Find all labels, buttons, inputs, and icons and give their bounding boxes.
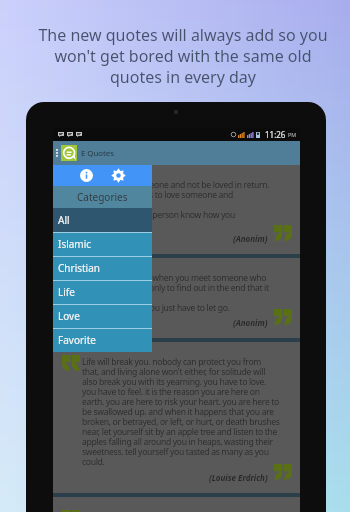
staticText: PM bbox=[288, 131, 297, 138]
button[interactable]: Favorite bbox=[53, 328, 152, 352]
button[interactable]: Islamic bbox=[53, 232, 152, 256]
staticText: Categories bbox=[77, 190, 128, 204]
button[interactable]: Menu bbox=[53, 141, 61, 165]
staticText: ost painful thing is when you meet someo… bbox=[82, 272, 269, 314]
staticText: Favorite bbox=[58, 333, 96, 347]
button[interactable]: Life will break you. nobody can protect … bbox=[53, 342, 300, 493]
staticText: Islamic bbox=[58, 237, 92, 251]
staticText: (Anonim) bbox=[233, 233, 268, 244]
staticText: Life bbox=[58, 285, 75, 299]
staticText: All bbox=[58, 213, 70, 227]
staticText: Christian bbox=[58, 261, 100, 275]
staticText: Love bbox=[58, 309, 80, 323]
staticText: (Anonim) bbox=[233, 317, 268, 328]
button[interactable]: Settings bbox=[111, 168, 126, 183]
button[interactable]: All bbox=[53, 208, 152, 232]
staticText: The new quotes will always add so you wo… bbox=[33, 24, 333, 88]
staticText: orld is to love someone and not be loved… bbox=[82, 179, 270, 231]
button[interactable]: Love bbox=[53, 304, 152, 328]
button[interactable]: Christian bbox=[53, 256, 152, 280]
staticText: Life will break you. nobody can protect … bbox=[82, 356, 280, 468]
staticText: 11:26 bbox=[265, 129, 286, 140]
button[interactable] bbox=[53, 497, 300, 512]
staticText: (Louise Erdrich) bbox=[209, 472, 268, 483]
staticText: E Quotes bbox=[81, 148, 114, 159]
button[interactable]: Life bbox=[53, 280, 152, 304]
button[interactable]: App icon bbox=[61, 145, 77, 161]
button[interactable]: orld is to love someone and not be loved… bbox=[53, 165, 300, 254]
button[interactable]: ost painful thing is when you meet someo… bbox=[53, 258, 300, 338]
button[interactable]: Info bbox=[79, 168, 94, 183]
